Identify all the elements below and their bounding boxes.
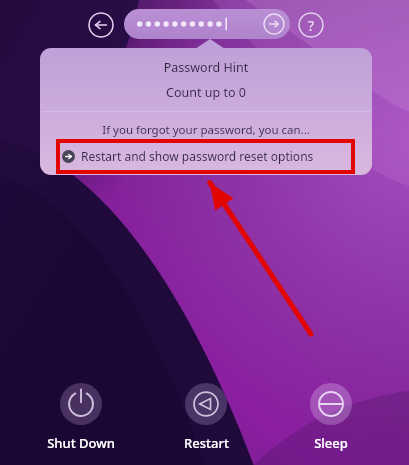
staticText: Count up to 0 <box>40 84 372 101</box>
staticText: ? <box>308 16 315 35</box>
staticText: If you forgot your password, you can… <box>40 122 372 138</box>
button[interactable]: Submit password <box>263 13 285 35</box>
button[interactable]: Restart and show password reset options <box>62 144 314 168</box>
button[interactable]: Restart <box>164 383 248 452</box>
button[interactable]: Back <box>88 12 114 38</box>
staticText: Restart and show password reset options <box>81 148 314 164</box>
button[interactable]: Shut Down <box>39 383 123 452</box>
button[interactable]: Help <box>298 12 324 38</box>
staticText: Shut Down <box>47 434 115 452</box>
staticText: Sleep <box>314 434 348 452</box>
staticText: Restart <box>184 434 229 452</box>
button[interactable]: Submit password <box>124 9 290 39</box>
staticText: Password Hint <box>40 59 372 76</box>
button[interactable]: Sleep <box>289 383 373 452</box>
